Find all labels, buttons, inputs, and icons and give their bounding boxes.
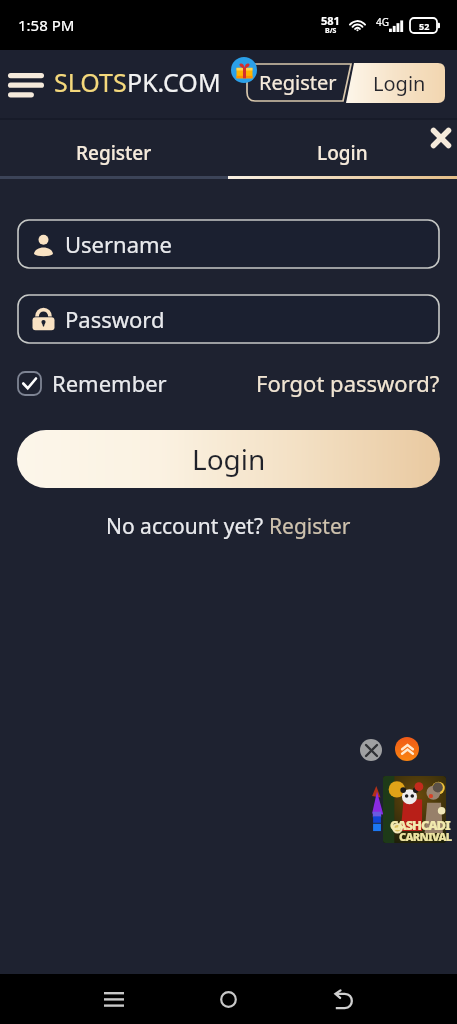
- staticText: B/S: [325, 26, 337, 36]
- button[interactable]: Back: [321, 977, 365, 1021]
- staticText: Forgot password?: [256, 368, 440, 398]
- staticText: 52: [419, 20, 430, 32]
- button[interactable]: Cashcadi Carnival game: [383, 776, 446, 843]
- button[interactable]: Home: [206, 977, 250, 1021]
- staticText: PK.COM: [127, 65, 221, 99]
- staticText: SLOTS: [54, 65, 127, 99]
- button[interactable]: Password: [17, 294, 440, 344]
- staticText: Login: [373, 70, 426, 97]
- staticText: Login: [192, 440, 266, 478]
- button[interactable]: Close: [425, 122, 457, 154]
- button[interactable]: Recents: [92, 977, 136, 1021]
- button[interactable]: Remember: [17, 368, 167, 398]
- staticText: No account yet?: [106, 512, 269, 541]
- staticText: Register: [76, 140, 152, 166]
- staticText: CARNIVAL: [399, 829, 452, 844]
- button[interactable]: Gift promotion: [231, 57, 257, 83]
- button[interactable]: Login: [17, 430, 440, 488]
- button[interactable]: Scroll to top: [395, 737, 419, 761]
- staticText: Username: [65, 229, 173, 259]
- button[interactable]: Forgot password?: [256, 368, 440, 398]
- staticText: Remember: [52, 368, 167, 398]
- staticText: Password: [65, 304, 165, 334]
- staticText: Login: [317, 140, 368, 166]
- button[interactable]: Register: [246, 63, 352, 102]
- button[interactable]: Login: [228, 120, 457, 179]
- staticText: CASHCADI: [390, 816, 450, 834]
- button[interactable]: Register: [0, 120, 228, 179]
- button[interactable]: Username: [17, 219, 440, 269]
- button[interactable]: Menu: [6, 65, 46, 105]
- button[interactable]: Register: [269, 512, 351, 541]
- staticText: 4G: [376, 15, 389, 29]
- button[interactable]: Close ad: [360, 739, 382, 761]
- staticText: 581: [321, 13, 340, 28]
- staticText: 1:58 PM: [18, 15, 75, 35]
- staticText: Register: [269, 512, 351, 541]
- button[interactable]: Login: [346, 63, 445, 103]
- staticText: Register: [259, 69, 337, 96]
